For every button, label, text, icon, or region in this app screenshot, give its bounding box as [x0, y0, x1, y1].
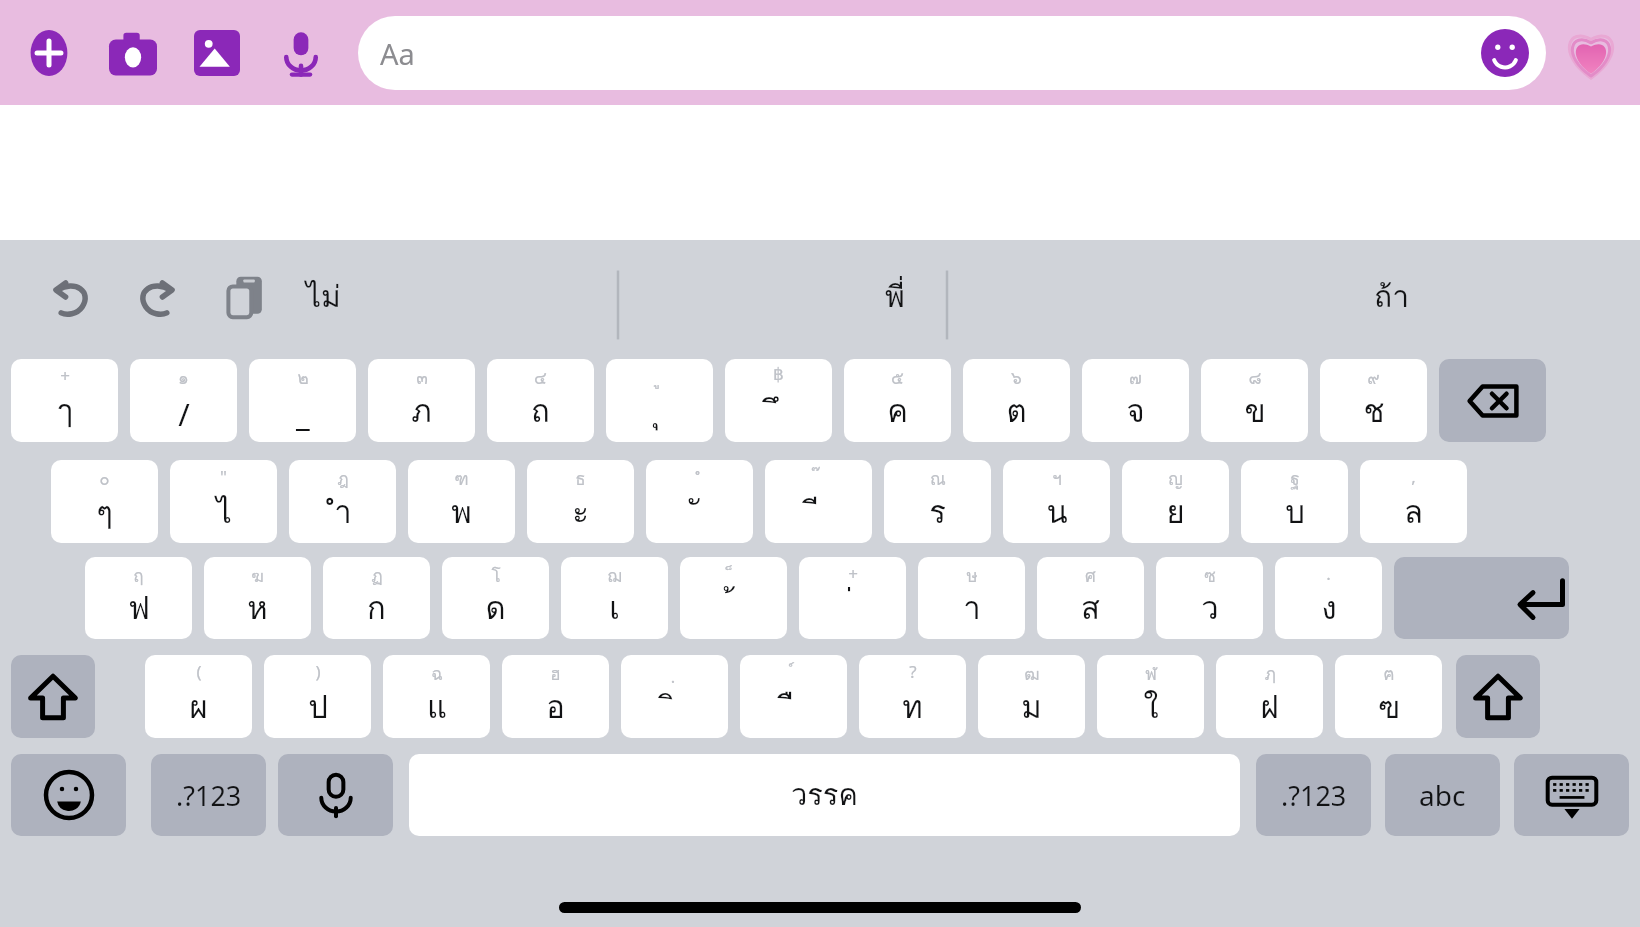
staticText: ญ [1168, 465, 1183, 492]
button[interactable]: ฺ [621, 655, 728, 738]
button[interactable]: ฅ [1335, 655, 1442, 738]
button[interactable]: ๕ [844, 359, 951, 442]
staticText: ต [1006, 386, 1027, 435]
staticText: ๔ [534, 364, 547, 391]
button[interactable]: ์ [740, 655, 847, 738]
button[interactable]: ๒ [249, 359, 356, 442]
button[interactable]: ถ้า [1143, 240, 1640, 353]
button[interactable]: Add [18, 22, 80, 84]
button[interactable]: Shift [1456, 655, 1540, 738]
button[interactable]: Aa [358, 16, 1546, 90]
button[interactable]: Voice message [270, 22, 332, 84]
staticText: ศ [1085, 562, 1096, 589]
staticText: ฅ [1383, 660, 1395, 687]
button[interactable]: ๗ [1082, 359, 1189, 442]
button[interactable]: Shift [11, 655, 95, 738]
button[interactable]: Voice input [278, 754, 393, 836]
staticText: ฐ [1290, 465, 1300, 492]
button[interactable]: ฒ [978, 655, 1085, 738]
button[interactable]: ษ [918, 557, 1025, 639]
staticText: ม [1021, 682, 1042, 731]
button[interactable]: Clipboard [216, 267, 276, 327]
button[interactable]: Redo [128, 267, 188, 327]
staticText: .?123 [176, 777, 242, 814]
button[interactable]: , [1360, 460, 1467, 543]
staticText: ห [247, 583, 268, 632]
staticText: ไ [216, 487, 232, 536]
button[interactable]: .?123 [151, 754, 266, 836]
button[interactable]: ็ [680, 557, 787, 639]
staticText: ) [315, 660, 321, 683]
staticText: ๅ [57, 386, 73, 435]
staticText: ใ [1143, 682, 1159, 731]
button[interactable]: ๐ [51, 460, 158, 543]
button[interactable]: ๖ [963, 359, 1070, 442]
button[interactable]: ฤ [85, 557, 192, 639]
button[interactable]: ู [606, 359, 713, 442]
button[interactable]: ( [145, 655, 252, 738]
staticText: น [1046, 487, 1068, 536]
staticText: ฟ [128, 583, 150, 632]
staticText: ว [1201, 583, 1219, 632]
button[interactable]: Undo [40, 267, 100, 327]
button[interactable]: abc [1385, 754, 1500, 836]
button[interactable]: .?123 [1256, 754, 1371, 836]
button[interactable]: . [1275, 557, 1382, 639]
button[interactable]: Hide keyboard [1514, 754, 1629, 836]
button[interactable]: Emoji keyboard [11, 754, 126, 836]
button[interactable]: Emoji [1480, 28, 1530, 78]
button[interactable]: ๘ [1201, 359, 1308, 442]
button[interactable]: ๓ [368, 359, 475, 442]
button[interactable]: ฏ [323, 557, 430, 639]
button[interactable]: Enter [1394, 557, 1569, 639]
button[interactable]: ฿ [725, 359, 832, 442]
staticText: ษ [966, 562, 978, 589]
button[interactable]: ฯ [1003, 460, 1110, 543]
button[interactable]: Like [1560, 22, 1622, 84]
button[interactable]: ฮ [502, 655, 609, 738]
button[interactable]: " [170, 460, 277, 543]
button[interactable]: ํ [646, 460, 753, 543]
button[interactable]: ญ [1122, 460, 1229, 543]
button[interactable]: ๊ [765, 460, 872, 543]
button[interactable]: + [799, 557, 906, 639]
staticText: ล [1404, 487, 1423, 536]
button[interactable]: โ [442, 557, 549, 639]
button[interactable]: ฎ [289, 460, 396, 543]
button[interactable]: ๔ [487, 359, 594, 442]
button[interactable]: ฐ [1241, 460, 1348, 543]
staticText: ๑ [178, 364, 189, 391]
staticText: เ [609, 583, 620, 632]
button[interactable]: ) [264, 655, 371, 738]
button[interactable]: ๑ [130, 359, 237, 442]
button[interactable]: ฑ [408, 460, 515, 543]
button[interactable]: ๙ [1320, 359, 1427, 442]
staticText: ฿ [773, 364, 784, 384]
button[interactable]: + [11, 359, 118, 442]
button[interactable]: ณ [884, 460, 991, 543]
staticText: ฑ [454, 465, 469, 492]
button[interactable]: ฌ [561, 557, 668, 639]
staticText: ฉ [431, 660, 443, 687]
staticText: + [848, 562, 858, 585]
button[interactable]: ฦ [1216, 655, 1323, 738]
staticText: ๖ [1011, 364, 1022, 391]
button[interactable]: ? [859, 655, 966, 738]
button[interactable]: Camera [102, 22, 164, 84]
button[interactable]: ไม่ [0, 240, 646, 353]
button[interactable]: Backspace [1439, 359, 1546, 442]
button[interactable]: ฉ [383, 655, 490, 738]
button[interactable]: ฬ [1097, 655, 1204, 738]
staticText: โ [491, 562, 501, 589]
button[interactable]: วรรค [409, 754, 1240, 836]
staticText: " [220, 465, 227, 488]
button[interactable]: ศ [1037, 557, 1144, 639]
button[interactable]: Gallery [186, 22, 248, 84]
staticText: ก [367, 583, 386, 632]
staticText: ง [1321, 583, 1337, 632]
button[interactable]: ฆ [204, 557, 311, 639]
button[interactable]: ซ [1156, 557, 1263, 639]
staticText: ฒ [1024, 660, 1040, 687]
button[interactable]: ธ [527, 460, 634, 543]
button[interactable]: พี่ [646, 240, 1143, 353]
